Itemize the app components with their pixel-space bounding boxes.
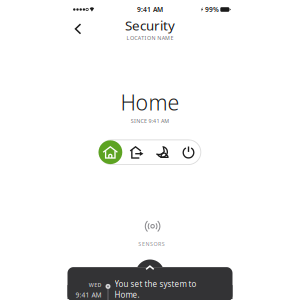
staticText: SINCE 9:41 AM xyxy=(131,117,169,124)
staticText: WED xyxy=(89,281,101,289)
staticText: SENSORS xyxy=(138,240,165,247)
staticText: You set the system to Home. xyxy=(114,279,196,300)
staticText: Security xyxy=(125,16,175,34)
button[interactable]: System off xyxy=(177,139,200,165)
button[interactable]: Away mode xyxy=(125,139,148,165)
button[interactable]: Expand activity xyxy=(141,261,159,275)
staticText: 9:41 AM xyxy=(75,291,101,299)
button[interactable]: Night mode xyxy=(151,139,174,165)
staticText: LOCATION NAME xyxy=(126,34,173,42)
button[interactable]: Home mode xyxy=(98,139,123,165)
button[interactable]: Back xyxy=(67,20,91,38)
staticText: 9:41 AM xyxy=(137,5,163,14)
staticText: 99% xyxy=(205,5,219,14)
button[interactable]: Sensors xyxy=(127,221,173,247)
staticText: Home xyxy=(120,88,179,116)
